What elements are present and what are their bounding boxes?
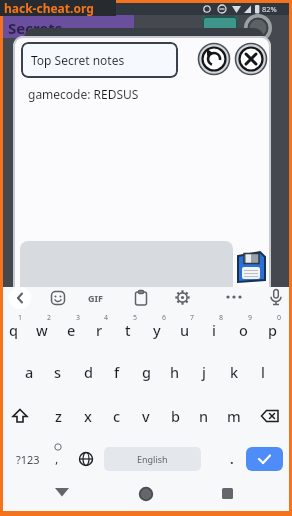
- button[interactable]: [222, 488, 233, 499]
- button[interactable]: p: [258, 310, 286, 350]
- button[interactable]: o: [229, 310, 257, 350]
- staticText: i: [212, 320, 216, 340]
- button[interactable]: f: [103, 352, 131, 392]
- button[interactable]: q: [0, 310, 27, 350]
- button[interactable]: [246, 447, 283, 471]
- staticText: 82%: [262, 4, 277, 14]
- button[interactable]: c: [103, 396, 131, 436]
- staticText: 4: [104, 313, 109, 323]
- staticText: v: [142, 406, 150, 426]
- button[interactable]: z: [44, 396, 72, 436]
- staticText: r: [96, 320, 103, 340]
- staticText: ?123: [16, 452, 40, 467]
- button[interactable]: v: [132, 396, 160, 436]
- staticText: c: [113, 406, 121, 426]
- button[interactable]: w: [28, 310, 56, 350]
- button[interactable]: ,: [47, 439, 69, 475]
- button[interactable]: t: [114, 310, 142, 350]
- staticText: 7: [190, 313, 195, 323]
- staticText: l: [261, 362, 265, 382]
- button[interactable]: h: [161, 352, 189, 392]
- staticText: j: [202, 362, 206, 382]
- button[interactable]: [236, 251, 266, 283]
- staticText: Top Secret notes: [31, 52, 125, 68]
- button[interactable]: [198, 43, 230, 75]
- staticText: y: [153, 320, 161, 340]
- staticText: n: [199, 406, 209, 426]
- button[interactable]: [9, 287, 31, 309]
- staticText: Secrets: [8, 18, 63, 38]
- button[interactable]: e: [57, 310, 85, 350]
- staticText: z: [55, 406, 62, 426]
- button[interactable]: [259, 407, 281, 425]
- staticText: k: [230, 362, 239, 382]
- button[interactable]: [174, 289, 191, 306]
- button[interactable]: r: [85, 310, 113, 350]
- staticText: u: [180, 320, 190, 340]
- staticText: e: [67, 320, 76, 340]
- button[interactable]: [53, 485, 71, 499]
- button[interactable]: u: [171, 310, 199, 350]
- staticText: m: [227, 406, 241, 426]
- button[interactable]: d: [74, 352, 102, 392]
- button[interactable]: [269, 288, 283, 307]
- button[interactable]: [225, 292, 243, 302]
- staticText: h: [170, 362, 180, 382]
- staticText: o: [239, 320, 248, 340]
- staticText: 6: [162, 313, 167, 323]
- button[interactable]: k: [220, 352, 248, 392]
- button[interactable]: GIF: [88, 292, 103, 304]
- button[interactable]: [20, 241, 233, 303]
- staticText: f: [114, 362, 120, 382]
- button[interactable]: s: [44, 352, 72, 392]
- staticText: s: [54, 362, 62, 382]
- button[interactable]: [50, 290, 66, 306]
- button[interactable]: [78, 451, 94, 467]
- button[interactable]: Secrets: [3, 15, 134, 38]
- button[interactable]: i: [200, 310, 228, 350]
- button[interactable]: [10, 406, 30, 426]
- button[interactable]: n: [190, 396, 218, 436]
- staticText: English: [137, 453, 168, 465]
- button[interactable]: [133, 289, 149, 307]
- staticText: 5: [133, 313, 138, 323]
- button[interactable]: Top Secret notes: [21, 42, 178, 78]
- button[interactable]: x: [74, 396, 102, 436]
- staticText: ,: [55, 449, 59, 467]
- staticText: .: [230, 450, 234, 468]
- staticText: 8: [219, 313, 224, 323]
- staticText: b: [171, 406, 180, 426]
- staticText: hack-cheat.org: [4, 0, 94, 16]
- staticText: p: [268, 320, 277, 340]
- staticText: w: [36, 320, 48, 340]
- button[interactable]: ?123: [11, 445, 45, 473]
- staticText: x: [84, 406, 92, 426]
- button[interactable]: English: [104, 447, 201, 471]
- button[interactable]: y: [143, 310, 171, 350]
- staticText: 2: [47, 313, 52, 323]
- staticText: 3: [76, 313, 81, 323]
- button[interactable]: .: [223, 445, 241, 473]
- button[interactable]: [139, 487, 153, 501]
- button[interactable]: a: [15, 352, 43, 392]
- staticText: d: [84, 362, 93, 382]
- staticText: 9: [248, 313, 253, 323]
- staticText: 0: [277, 313, 282, 323]
- staticText: t: [125, 320, 131, 340]
- staticText: g: [142, 362, 151, 382]
- staticText: gamecode: REDSUS: [28, 86, 139, 102]
- staticText: q: [9, 320, 18, 340]
- button[interactable]: m: [220, 396, 248, 436]
- button[interactable]: j: [190, 352, 218, 392]
- staticText: a: [25, 362, 34, 382]
- button[interactable]: [235, 43, 267, 75]
- staticText: 1: [18, 313, 23, 323]
- button[interactable]: g: [132, 352, 160, 392]
- button[interactable]: b: [161, 396, 189, 436]
- button[interactable]: l: [249, 352, 277, 392]
